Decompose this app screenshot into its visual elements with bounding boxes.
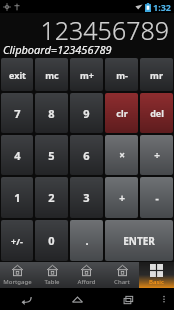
button[interactable]: × bbox=[105, 135, 138, 175]
staticText: 1:32 bbox=[153, 1, 171, 13]
staticText: Clipboard=123456789 bbox=[3, 42, 112, 57]
staticText: 6 bbox=[83, 148, 90, 163]
button[interactable]: 9 bbox=[70, 93, 103, 133]
button[interactable]: m- bbox=[105, 58, 138, 91]
staticText: exit bbox=[9, 69, 26, 81]
button[interactable]: 7 bbox=[1, 93, 33, 133]
staticText: - bbox=[155, 191, 159, 205]
button[interactable]: mc bbox=[35, 58, 68, 91]
staticText: Basic bbox=[149, 278, 164, 286]
staticText: 123456789 bbox=[40, 13, 169, 41]
staticText: 8 bbox=[48, 106, 55, 121]
staticText: 0 bbox=[48, 233, 55, 248]
button[interactable]: Back bbox=[0, 288, 52, 310]
staticText: 9 bbox=[83, 106, 90, 121]
button[interactable]: clr bbox=[105, 93, 138, 133]
button[interactable]: Basic bbox=[139, 262, 174, 288]
staticText: m- bbox=[116, 69, 128, 81]
staticText: 5 bbox=[48, 148, 55, 163]
staticText: 3 bbox=[83, 190, 90, 205]
staticText: 7 bbox=[14, 106, 21, 121]
staticText: mc bbox=[45, 69, 59, 81]
button[interactable]: ÷ bbox=[140, 135, 173, 175]
staticText: 2 bbox=[48, 190, 55, 205]
button[interactable]: Home bbox=[52, 288, 103, 310]
button[interactable]: 5 bbox=[35, 135, 68, 175]
button[interactable]: . bbox=[70, 220, 103, 261]
button[interactable]: 1 bbox=[1, 177, 33, 218]
staticText: Table bbox=[44, 278, 60, 286]
button[interactable]: 0 bbox=[35, 220, 68, 261]
button[interactable]: 8 bbox=[35, 93, 68, 133]
staticText: clr bbox=[116, 107, 128, 119]
button[interactable]: More options bbox=[154, 288, 174, 310]
button[interactable]: Afford bbox=[69, 262, 104, 288]
staticText: × bbox=[119, 148, 125, 162]
button[interactable]: mr bbox=[140, 58, 173, 91]
button[interactable]: - bbox=[140, 177, 173, 218]
staticText: Mortgage bbox=[3, 278, 32, 286]
button[interactable]: del bbox=[140, 93, 173, 133]
button[interactable]: 4 bbox=[1, 135, 33, 175]
staticText: m+ bbox=[80, 69, 94, 81]
button[interactable]: ENTER bbox=[105, 220, 173, 261]
staticText: mr bbox=[150, 69, 163, 81]
staticText: ENTER bbox=[123, 234, 155, 248]
button[interactable]: 2 bbox=[35, 177, 68, 218]
button[interactable]: +/- bbox=[1, 220, 33, 261]
staticText: ÷ bbox=[154, 148, 160, 162]
staticText: +/- bbox=[11, 235, 23, 247]
button[interactable]: 3 bbox=[70, 177, 103, 218]
staticText: 4 bbox=[14, 148, 21, 163]
staticText: del bbox=[150, 107, 164, 119]
button[interactable]: m+ bbox=[70, 58, 103, 91]
staticText: + bbox=[119, 191, 125, 205]
button[interactable]: + bbox=[105, 177, 138, 218]
button[interactable]: Recent apps bbox=[103, 288, 154, 310]
button[interactable]: 6 bbox=[70, 135, 103, 175]
staticText: Afford bbox=[77, 278, 96, 286]
staticText: Chart bbox=[114, 278, 130, 286]
button[interactable]: exit bbox=[1, 58, 33, 91]
button[interactable]: Chart bbox=[104, 262, 139, 288]
button[interactable]: Table bbox=[34, 262, 69, 288]
staticText: 1 bbox=[14, 190, 21, 205]
button[interactable]: Mortgage bbox=[0, 262, 34, 288]
staticText: . bbox=[85, 233, 89, 248]
